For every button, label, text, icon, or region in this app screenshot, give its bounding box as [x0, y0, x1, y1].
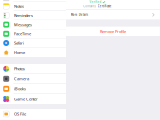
staticText: Notes — [14, 3, 24, 9]
button[interactable]: Safari — [0, 39, 66, 48]
button[interactable]: Remove Profile — [66, 27, 160, 36]
button[interactable]: Photos — [0, 64, 66, 74]
button[interactable]: Home — [0, 48, 66, 57]
button[interactable]: Messages — [0, 20, 66, 29]
button[interactable]: iBooks — [0, 84, 66, 94]
staticText: Remove Profile — [100, 29, 126, 34]
button[interactable]: Camera — [0, 74, 66, 84]
button[interactable]: Notes — [0, 2, 66, 11]
staticText: Safari — [14, 40, 24, 46]
staticText: Contains: — [83, 4, 96, 8]
button[interactable]: Reminders — [0, 11, 66, 20]
staticText: Game Center — [14, 96, 38, 102]
staticText: Photos — [14, 66, 25, 71]
button[interactable]: FaceTime — [0, 29, 66, 39]
staticText: Verified — [90, 0, 102, 4]
staticText: FaceTime — [14, 31, 31, 36]
staticText: Reminders — [14, 13, 33, 18]
staticText: Certificate — [98, 4, 112, 8]
staticText: Messages — [14, 22, 32, 27]
button[interactable]: More Details — [66, 10, 160, 20]
button[interactable]: Game Center — [0, 94, 66, 104]
staticText: Home — [14, 50, 25, 55]
staticText: Camera — [14, 76, 29, 81]
button[interactable]: OS File — [0, 109, 66, 119]
staticText: More Details — [71, 13, 88, 16]
staticText: OS File — [14, 111, 26, 117]
staticText: iBooks — [14, 86, 26, 91]
